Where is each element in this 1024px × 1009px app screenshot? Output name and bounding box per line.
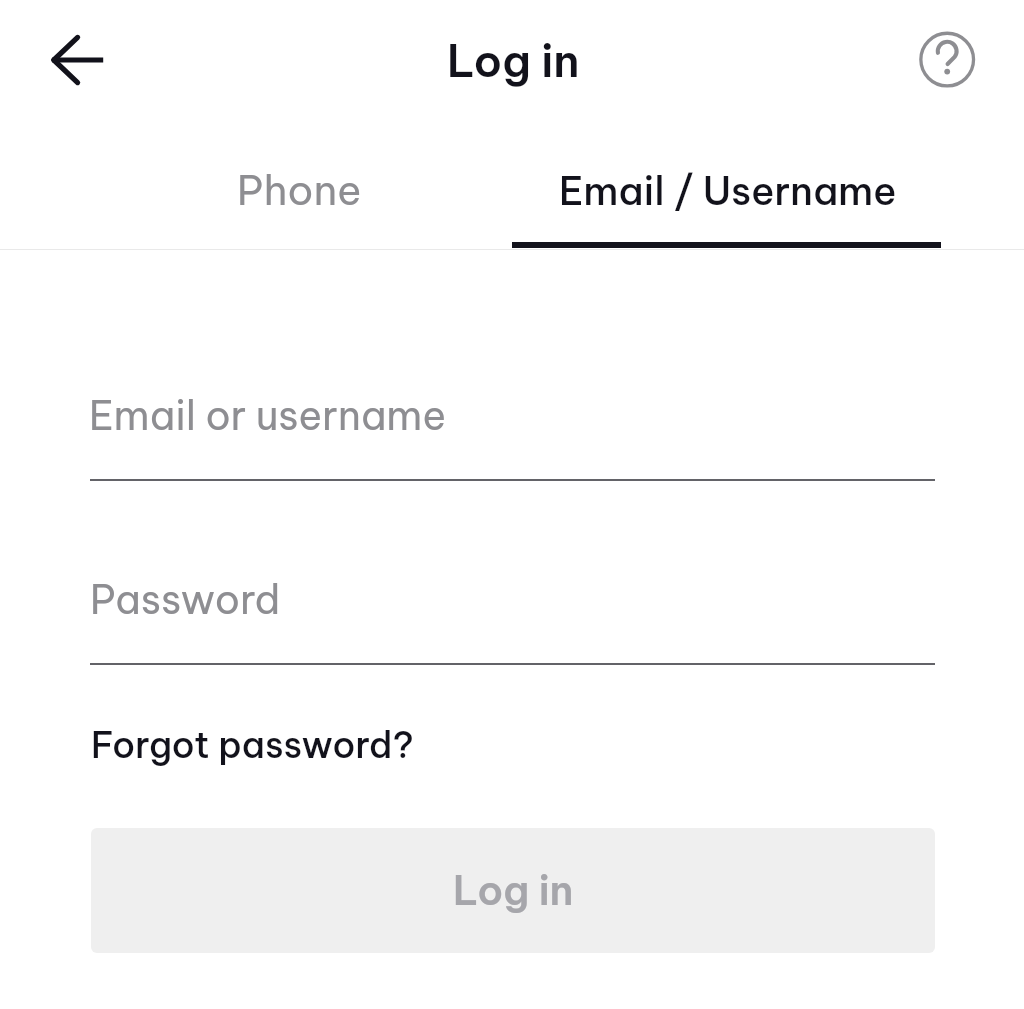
staticText: Password [90,574,281,625]
button[interactable]: Phone [85,152,514,248]
button[interactable]: Email or username [90,388,935,481]
staticText: Log in [453,865,574,916]
button[interactable]: Password [90,572,935,665]
button[interactable]: Help [914,26,981,93]
button[interactable]: Email / Username [513,152,942,248]
staticText: Email / Username [559,166,897,215]
button[interactable]: Log in [91,828,935,953]
staticText: Log in [447,33,580,89]
staticText: Phone [237,164,362,216]
staticText: Email or username [89,390,447,441]
button[interactable]: Back [19,27,86,94]
button[interactable]: Forgot password? [91,722,414,768]
